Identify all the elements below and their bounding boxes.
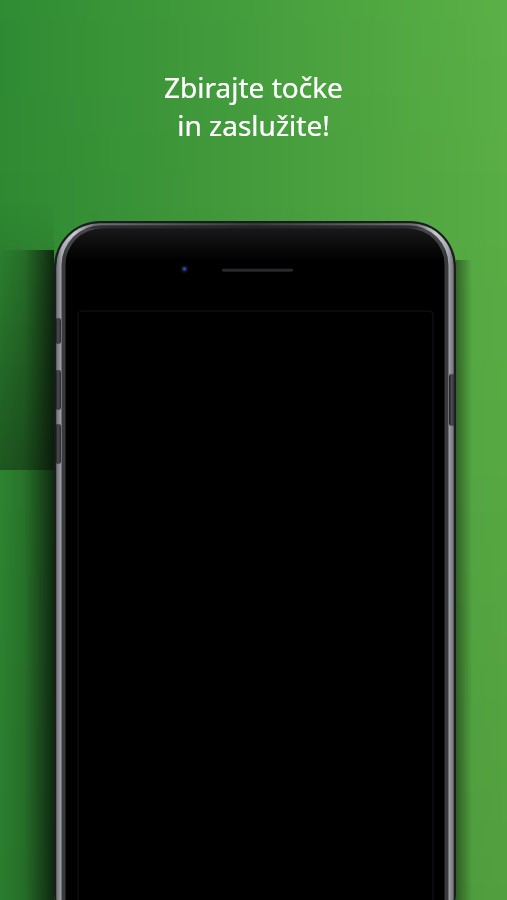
staticText: Zbirajte točke bbox=[164, 68, 343, 106]
staticText: in zaslužite! bbox=[177, 106, 330, 144]
